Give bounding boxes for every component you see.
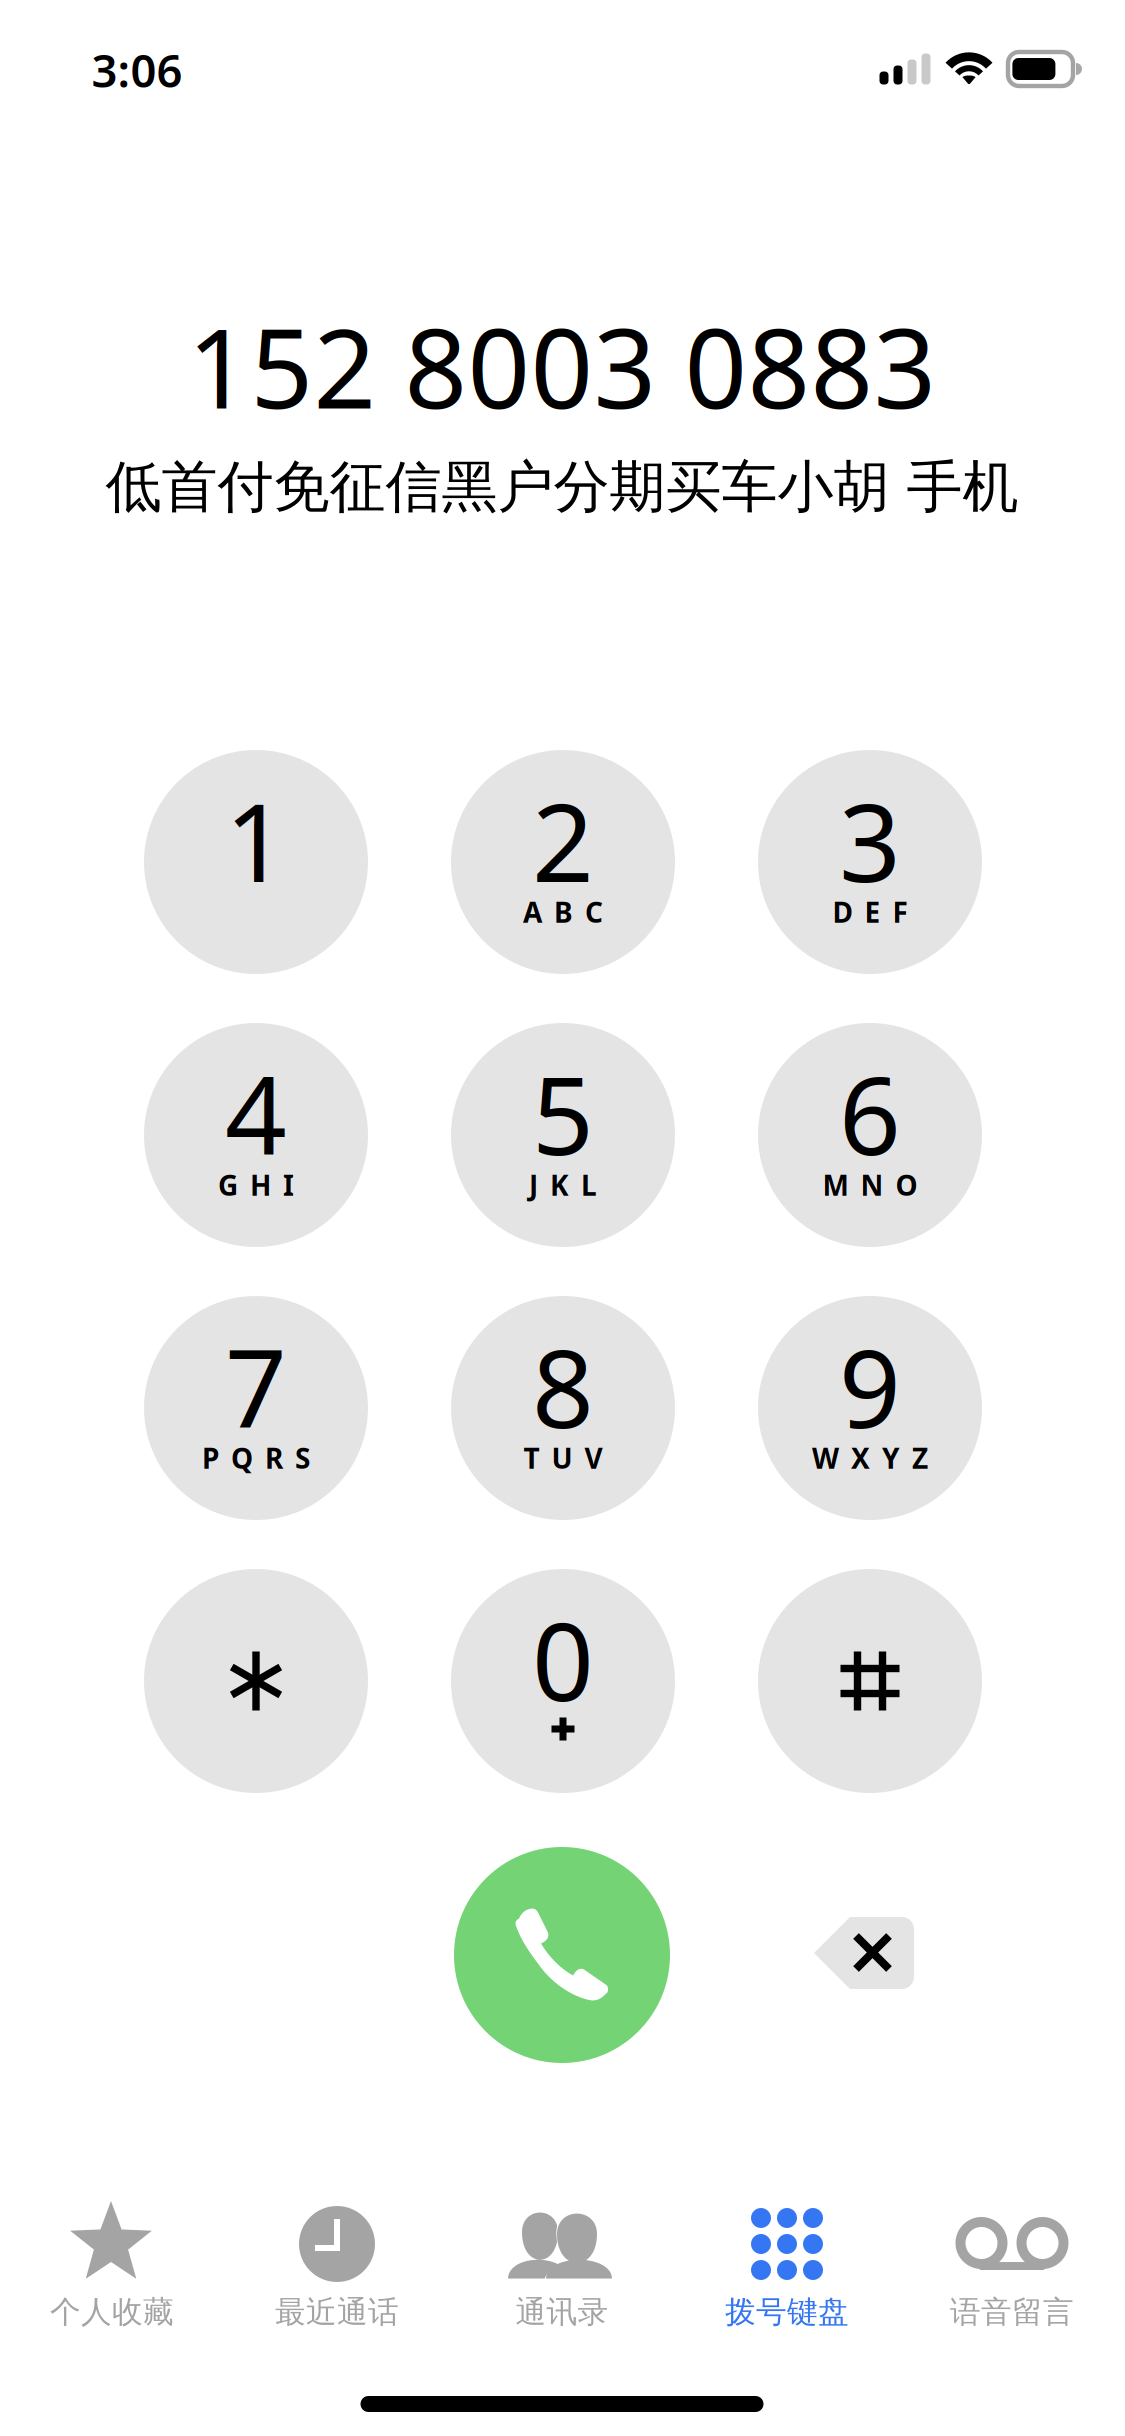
button[interactable]: 2 (451, 750, 675, 974)
button[interactable]: 5 (451, 1023, 675, 1247)
button[interactable]: 9 (758, 1296, 982, 1520)
staticText: 3 (839, 768, 901, 912)
staticText: 152 8003 0883 (187, 293, 936, 439)
staticText: 9 (839, 1314, 901, 1458)
staticText: MNO (822, 1166, 917, 1204)
button[interactable]: 0 (451, 1569, 675, 1793)
button[interactable]: Call (454, 1847, 670, 2063)
button[interactable]: * (144, 1569, 368, 1793)
staticText: 3:06 (91, 40, 182, 100)
staticText: 0 (532, 1587, 594, 1731)
staticText: 7 (225, 1314, 287, 1458)
button[interactable]: 7 (144, 1296, 368, 1520)
button[interactable]: 拨号键盘 (674, 2200, 899, 2336)
button[interactable]: 个人收藏 (0, 2200, 224, 2336)
staticText: GHI (218, 1166, 294, 1204)
staticText: 语音留言 (950, 2293, 1074, 2331)
button[interactable]: 6 (758, 1023, 982, 1247)
staticText: 个人收藏 (50, 2293, 174, 2331)
staticText: 2 (532, 768, 594, 912)
button[interactable]: 语音留言 (899, 2200, 1124, 2336)
button[interactable]: 最近通话 (224, 2200, 449, 2336)
button[interactable]: 1 (144, 750, 368, 974)
staticText: TUV (523, 1439, 602, 1477)
staticText: ABC (523, 893, 603, 931)
staticText: 1 (225, 768, 287, 912)
staticText: JKL (529, 1166, 597, 1204)
button[interactable]: 8 (451, 1296, 675, 1520)
staticText: 低首付免征信黑户分期买车小胡 手机 (105, 453, 1018, 521)
staticText: 4 (225, 1041, 287, 1185)
button[interactable]: 通讯录 (449, 2200, 674, 2336)
staticText: 8 (532, 1314, 594, 1458)
button[interactable]: 4 (144, 1023, 368, 1247)
staticText: WXYZ (812, 1439, 928, 1477)
staticText: PQRS (202, 1439, 310, 1477)
staticText: 拨号键盘 (725, 2293, 849, 2331)
button[interactable]: Delete (814, 1915, 914, 1991)
staticText: 5 (532, 1041, 594, 1185)
staticText: 通讯录 (515, 2293, 608, 2331)
staticText: 最近通话 (275, 2293, 399, 2331)
button[interactable]: # (758, 1569, 982, 1793)
button[interactable]: 3 (758, 750, 982, 974)
staticText: DEF (832, 893, 907, 931)
staticText: 6 (839, 1041, 901, 1185)
